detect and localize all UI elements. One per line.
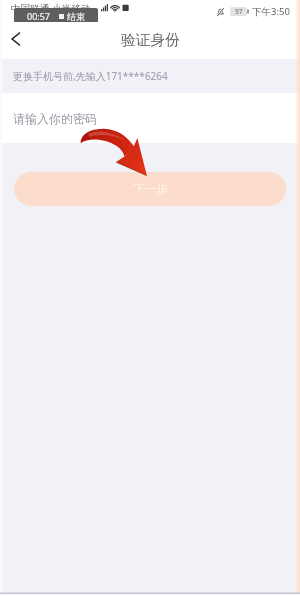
staticText: 结束 bbox=[67, 11, 85, 22]
staticText: 下一步 bbox=[133, 182, 168, 197]
button[interactable]: 下一步 bbox=[14, 172, 286, 206]
staticText: 中国联通 小米移动 bbox=[11, 2, 91, 15]
staticText: 请输入你的密码 bbox=[13, 111, 97, 126]
staticText: 下午3:50 bbox=[252, 5, 290, 18]
button[interactable]: 00:57 bbox=[14, 8, 98, 23]
staticText: 验证身份 bbox=[121, 31, 180, 50]
staticText: 更换手机号前,先输入171****6264 bbox=[13, 69, 168, 83]
staticText: 00:57 bbox=[27, 10, 51, 22]
staticText: 97 bbox=[235, 7, 243, 16]
button[interactable]: Back bbox=[0, 22, 33, 56]
